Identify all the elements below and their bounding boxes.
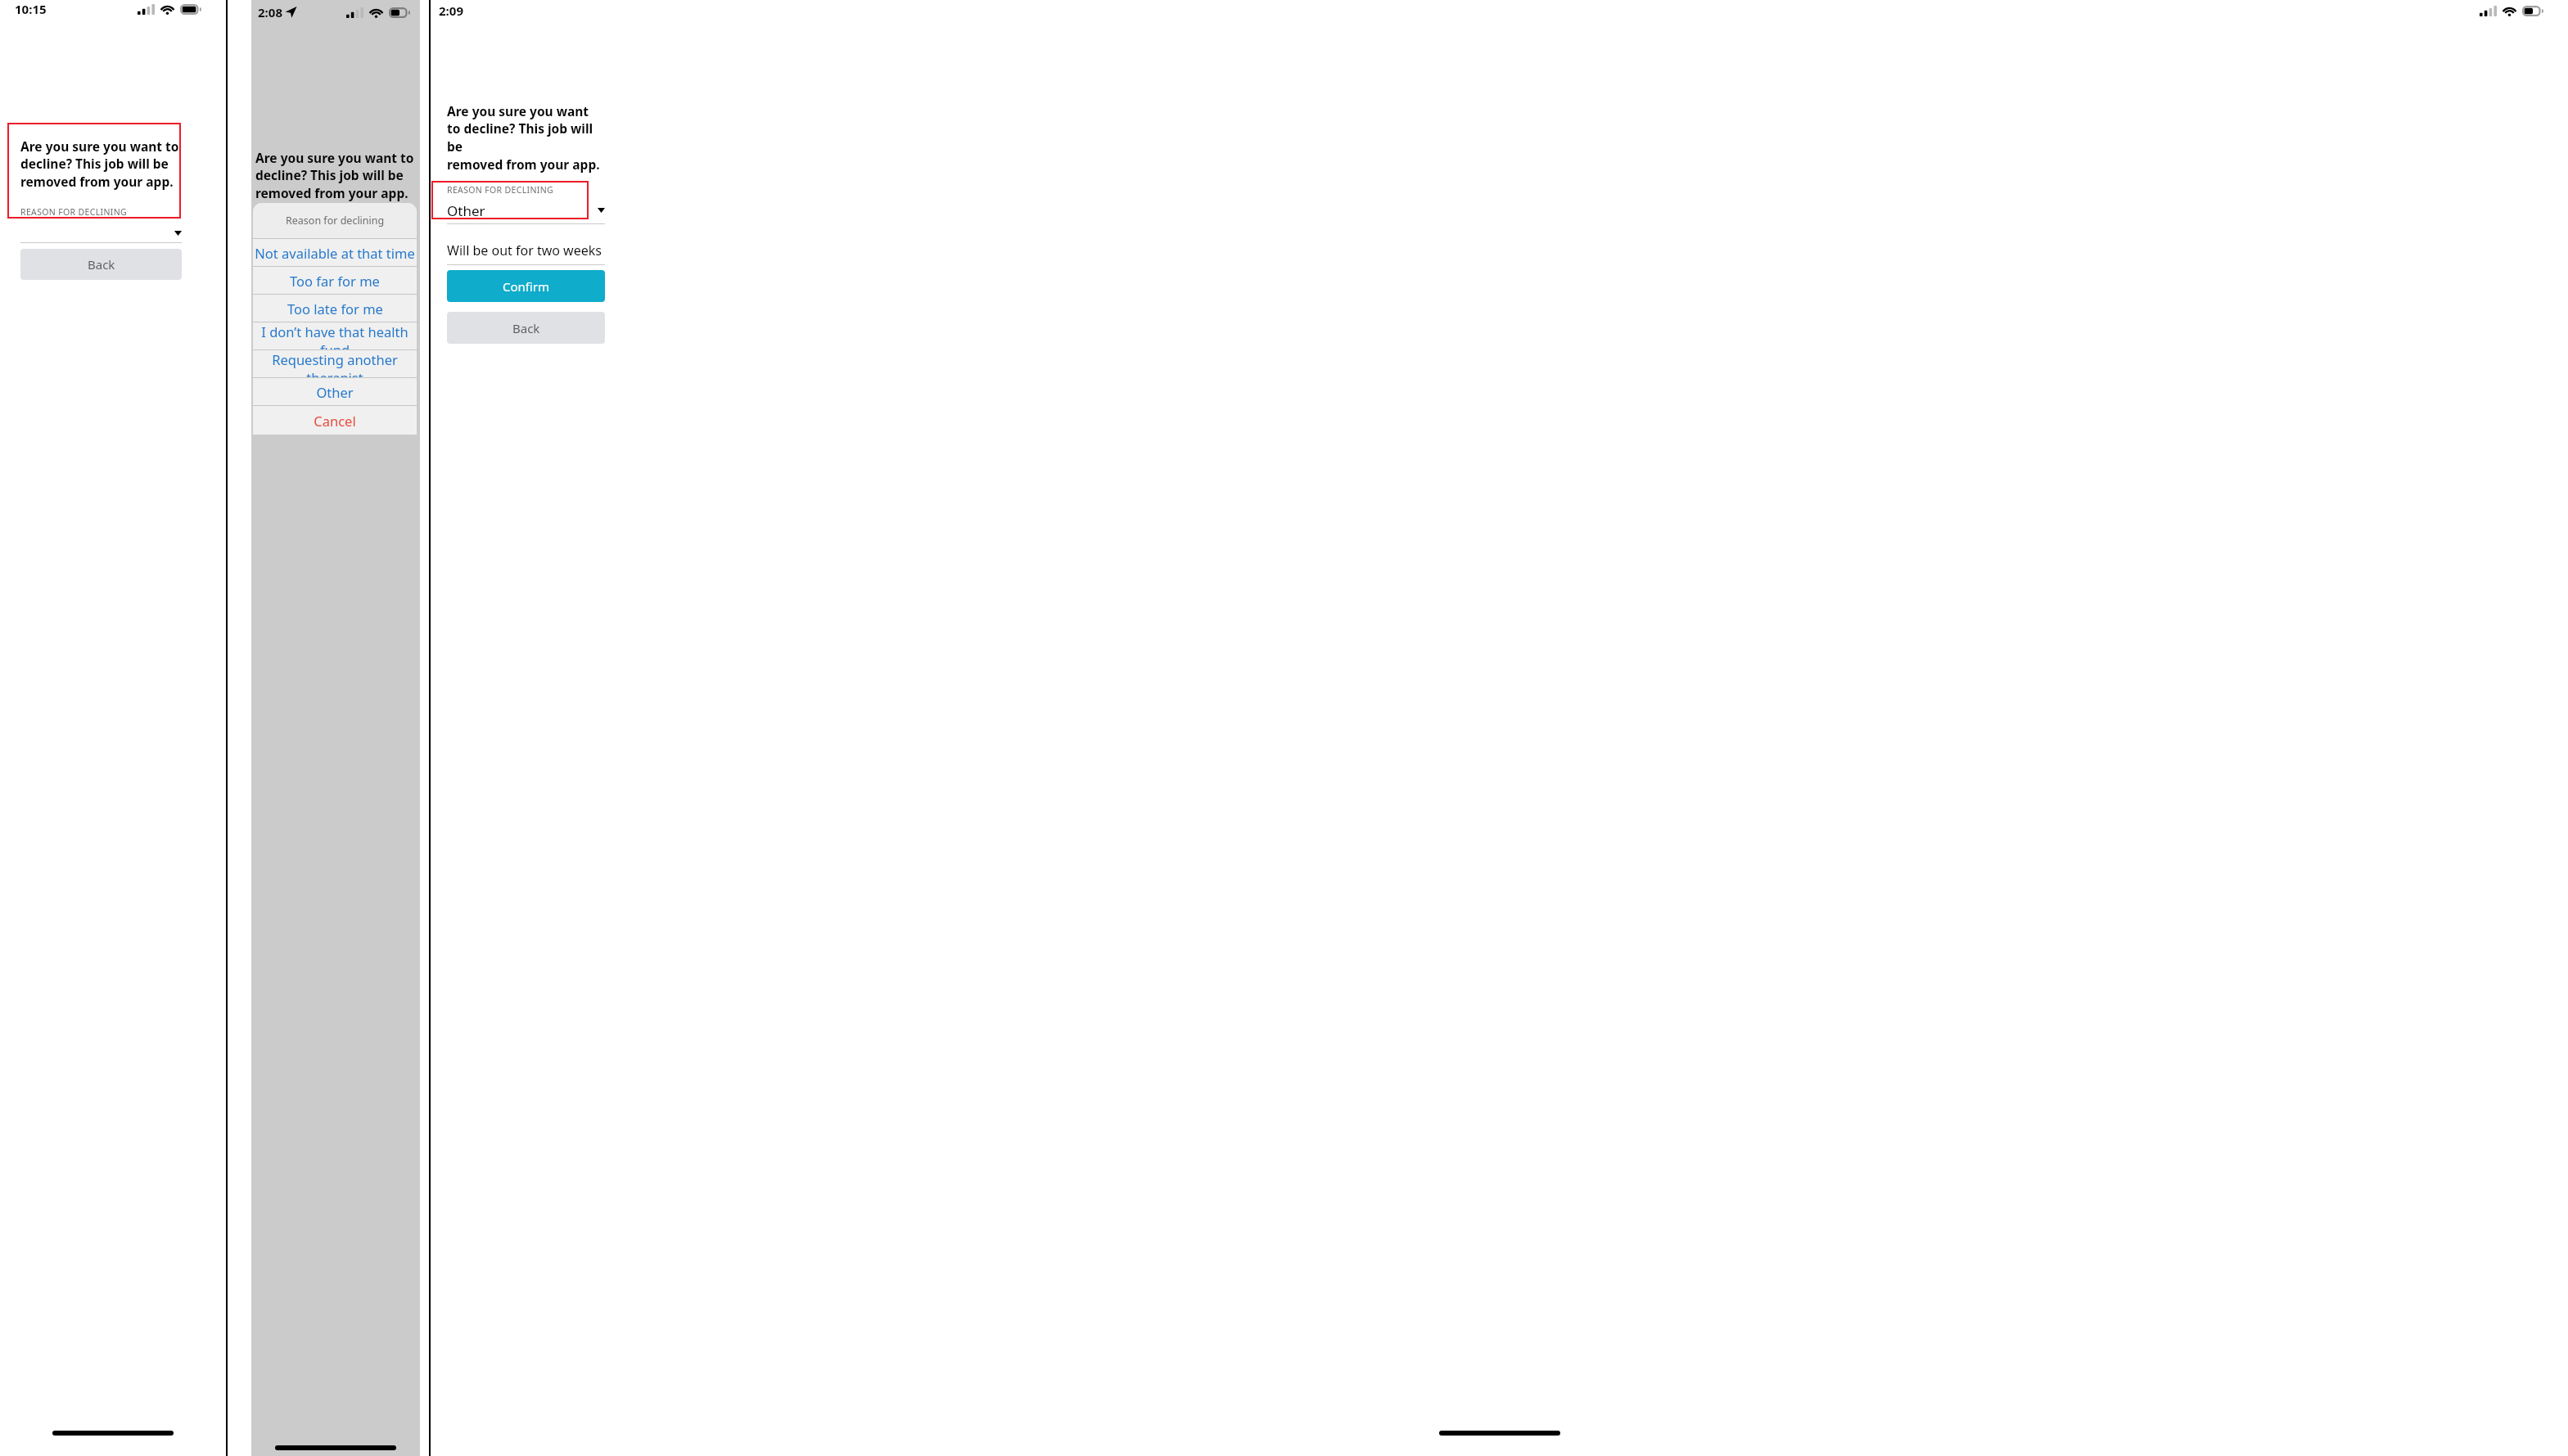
staticText: Requesting another therapist [253,350,417,377]
staticText: Will be out for two weeks [447,241,602,259]
button[interactable]: Not available at that time [253,239,417,266]
staticText: Are you sure you want to decline? This j… [255,149,419,202]
button[interactable]: Confirm [447,270,605,302]
staticText: Are you sure you want to decline? This j… [20,137,182,191]
staticText: I don’t have that health fund [253,322,417,349]
staticText: 2:09 [439,2,463,19]
staticText: Back [88,256,115,273]
button[interactable]: Back [447,312,605,344]
button[interactable]: I don’t have that health fund [253,322,417,349]
staticText: Back [512,320,540,336]
button[interactable]: Requesting another therapist [253,350,417,377]
button[interactable]: Back [20,249,182,280]
staticText: Are you sure you want to decline? This j… [447,102,605,174]
staticText: REASON FOR DECLINING [20,206,128,218]
button[interactable]: Cancel [253,406,417,435]
staticText: Other [447,201,485,220]
staticText: 10:15 [15,1,47,17]
staticText: REASON FOR DECLINING [447,184,554,196]
staticText: 2:08 [258,4,282,20]
button[interactable]: Too late for me [253,295,417,322]
button[interactable]: Select reason for declining [447,201,605,220]
staticText: Too far for me [290,272,380,290]
staticText: Too late for me [287,300,383,318]
staticText: Not available at that time [255,244,415,262]
button[interactable]: Other [253,378,417,405]
button[interactable]: Too far for me [253,267,417,294]
button[interactable]: Select reason for declining [20,227,182,239]
staticText: Confirm [503,278,550,295]
staticText: Other [316,383,354,401]
staticText: Cancel [314,412,356,430]
staticText: Reason for declining [286,214,385,228]
